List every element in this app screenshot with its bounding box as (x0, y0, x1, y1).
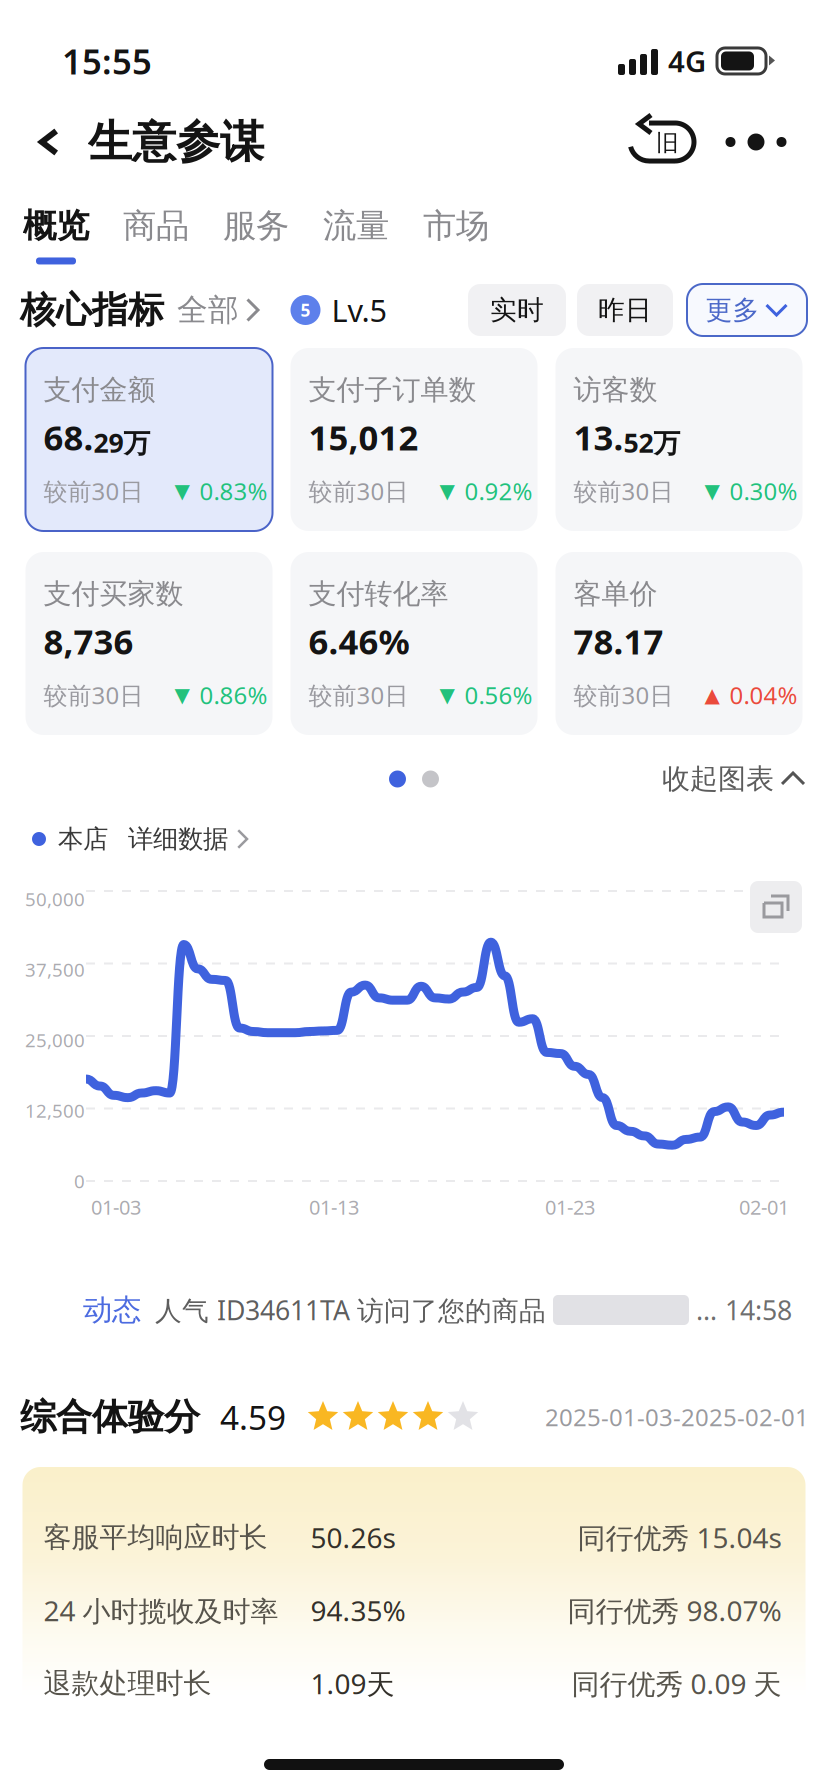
staticText: 详细数据 (128, 823, 228, 854)
staticText: 50.26s (310, 1519, 395, 1556)
staticText: 4G (668, 41, 706, 80)
button[interactable]: 访客数 (555, 348, 802, 531)
staticText: 15,012 (308, 414, 418, 460)
staticText: 2025-01-03-2025-02-01 (545, 1401, 809, 1433)
staticText: 0.92% (464, 475, 532, 507)
staticText: 0 (74, 1169, 85, 1193)
button[interactable]: 支付金额 (25, 348, 272, 531)
staticText: 访客数 (573, 373, 657, 407)
staticText: 更多 (705, 294, 759, 326)
button[interactable]: 动态 (0, 1285, 828, 1335)
staticText: 0.04% (729, 679, 797, 711)
staticText: 01-03 (91, 1194, 141, 1220)
staticText: 核心指标 (20, 288, 164, 332)
staticText: 生意参谋 (88, 115, 264, 169)
staticText: 较前30日 (573, 679, 673, 711)
staticText: 较前30日 (308, 679, 408, 711)
button[interactable]: 全部 (177, 291, 259, 329)
button[interactable]: 旧版 (638, 112, 696, 172)
staticText: 0.56% (464, 679, 532, 711)
staticText: 支付买家数 (43, 577, 183, 611)
staticText: 人气 ID34611TA 访问了您的商品 (155, 1292, 546, 1328)
button[interactable]: 流量 (306, 189, 406, 281)
staticText: 实时 (490, 294, 544, 326)
staticText: 0.86% (199, 679, 267, 711)
staticText: 较前30日 (573, 475, 673, 507)
button[interactable]: 支付转化率 (290, 552, 537, 735)
staticText: 13. (573, 414, 623, 460)
button[interactable]: 收起图表 (662, 762, 806, 796)
staticText: 市场 (423, 205, 489, 246)
button[interactable]: 详细数据 (128, 823, 248, 854)
staticText: 同行优秀 98.07% (567, 1592, 781, 1629)
staticText: 94.35% (310, 1592, 405, 1629)
staticText: 客单价 (573, 577, 657, 611)
button[interactable]: 支付买家数 (25, 552, 272, 735)
staticText: 14:58 (725, 1292, 792, 1328)
staticText: ▲ (704, 684, 719, 706)
staticText: 动态 (83, 1292, 141, 1328)
staticText: ▼ (174, 684, 189, 706)
staticText: 6.46% (308, 618, 409, 664)
staticText: 收起图表 (662, 762, 774, 796)
staticText: 0.83% (199, 475, 267, 507)
staticText: 服务 (223, 205, 289, 246)
staticText: 52万 (623, 425, 680, 460)
staticText: 1.09天 (310, 1665, 394, 1702)
staticText: 本店 (58, 823, 108, 854)
staticText: 退款处理时长 (43, 1666, 211, 1701)
staticText: 29万 (93, 425, 150, 460)
staticText: ▼ (174, 480, 189, 502)
staticText: 68. (43, 414, 93, 460)
staticText: ▼ (704, 480, 719, 502)
staticText: 同行优秀 0.09 天 (571, 1665, 781, 1702)
staticText: 较前30日 (308, 475, 408, 507)
staticText: 8,736 (43, 618, 133, 664)
staticText: Lv.5 (331, 290, 387, 330)
staticText: 支付金额 (43, 373, 155, 407)
staticText: 25,000 (25, 1028, 85, 1052)
staticText: 全部 (177, 291, 239, 329)
button[interactable]: 全屏查看 (750, 881, 802, 933)
staticText: 15:55 (62, 38, 152, 84)
staticText: … (696, 1292, 717, 1328)
staticText: 78.17 (573, 618, 663, 664)
staticText: 概览 (23, 205, 89, 246)
button[interactable]: 昨日 (577, 284, 673, 336)
staticText: 客服平均响应时长 (43, 1520, 267, 1555)
staticText: 综合体验分 (20, 1395, 200, 1439)
button[interactable]: 更多 (720, 118, 792, 166)
staticText: 12,500 (25, 1098, 85, 1123)
staticText: 较前30日 (43, 679, 143, 711)
button[interactable]: 市场 (406, 189, 506, 281)
staticText: 商品 (123, 205, 189, 246)
staticText: 37,500 (25, 957, 85, 982)
staticText: 4.59 (220, 1395, 286, 1439)
staticText: 较前30日 (43, 475, 143, 507)
staticText: 02-01 (739, 1194, 789, 1220)
button[interactable]: 服务 (206, 189, 306, 281)
button[interactable]: 商品 (106, 189, 206, 281)
button[interactable]: 实时 (468, 284, 566, 336)
staticText: ▼ (439, 684, 454, 706)
staticText: 流量 (323, 205, 389, 246)
button[interactable]: 返回 (26, 110, 72, 174)
staticText: 旧 (656, 129, 679, 157)
button[interactable]: 支付子订单数 (290, 348, 537, 531)
button[interactable]: 5 (287, 290, 387, 330)
staticText: 50,000 (25, 887, 85, 911)
staticText: ▼ (439, 480, 454, 502)
staticText: 同行优秀 15.04s (577, 1519, 781, 1556)
button[interactable]: 概览 (6, 189, 106, 281)
button[interactable]: 更多 (687, 284, 807, 336)
staticText: 01-13 (309, 1194, 359, 1220)
button[interactable]: 客单价 (555, 552, 802, 735)
staticText: 支付转化率 (308, 577, 448, 611)
staticText: 0.30% (729, 475, 797, 507)
staticText: 昨日 (598, 294, 652, 326)
staticText: 5 (300, 298, 310, 321)
staticText: 支付子订单数 (308, 373, 476, 407)
staticText: 24 小时揽收及时率 (43, 1592, 278, 1629)
staticText: 01-23 (545, 1194, 595, 1220)
